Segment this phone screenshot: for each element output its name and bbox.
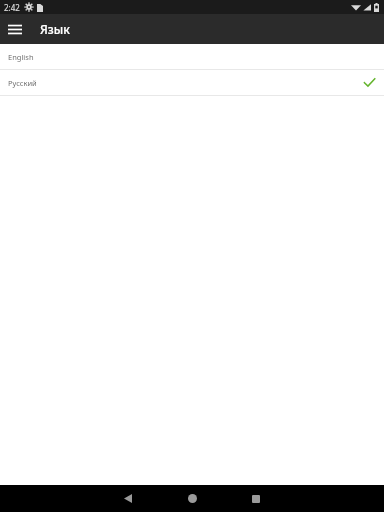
button[interactable]: Home <box>160 485 224 512</box>
button[interactable]: English <box>0 44 384 69</box>
button[interactable]: Back <box>96 485 160 512</box>
button[interactable]: Recent apps <box>224 485 288 512</box>
button[interactable]: Open navigation menu <box>0 14 30 44</box>
staticText: Русский <box>8 78 37 88</box>
staticText: 2:42 <box>4 2 20 13</box>
button[interactable]: Русский <box>0 70 384 95</box>
staticText: English <box>8 52 34 62</box>
staticText: Язык <box>40 21 70 37</box>
